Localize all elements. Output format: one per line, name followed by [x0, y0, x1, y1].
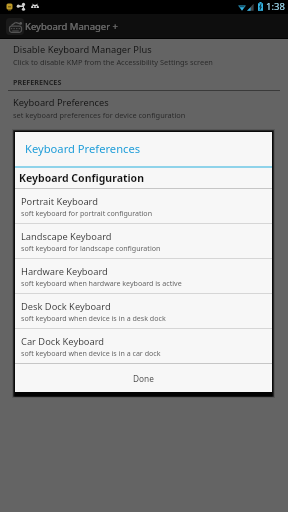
- staticText: soft keyboard for portrait configuration: [21, 208, 153, 218]
- staticText: Disable Keyboard Manager Plus: [13, 43, 152, 56]
- staticText: set keyboard preferences for device conf…: [13, 110, 186, 120]
- button[interactable]: Car Dock Keyboard: [15, 329, 272, 363]
- staticText: 1:38: [266, 0, 285, 13]
- staticText: Click to disable KMP from the Accessibil…: [13, 57, 213, 67]
- button[interactable]: App icon: [6, 18, 24, 35]
- staticText: PREFERENCES: [13, 77, 62, 87]
- button[interactable]: Landscape Keyboard: [15, 224, 272, 258]
- button[interactable]: Hardware Keyboard: [15, 259, 272, 293]
- button[interactable]: Disable Keyboard Manager Plus: [0, 43, 288, 67]
- staticText: soft keyboard when hardware keyboard is …: [21, 278, 182, 288]
- staticText: Landscape Keyboard: [21, 230, 112, 243]
- staticText: Portrait Keyboard: [21, 195, 98, 208]
- button[interactable]: Done: [15, 364, 272, 392]
- staticText: soft keyboard when device is in a desk d…: [21, 313, 166, 323]
- staticText: Keyboard Preferences: [25, 141, 141, 156]
- button[interactable]: Desk Dock Keyboard: [15, 294, 272, 328]
- staticText: Hardware Keyboard: [21, 265, 108, 278]
- staticText: Keyboard Configuration: [19, 171, 145, 185]
- staticText: soft keyboard for landscape configuratio…: [21, 243, 161, 253]
- staticText: Keyboard Manager +: [25, 20, 119, 33]
- staticText: Keyboard Preferences: [13, 96, 109, 109]
- button[interactable]: Portrait Keyboard: [15, 189, 272, 223]
- button[interactable]: Keyboard Preferences: [0, 96, 288, 120]
- staticText: Desk Dock Keyboard: [21, 300, 111, 313]
- staticText: soft keyboard when device is in a car do…: [21, 348, 161, 358]
- staticText: Done: [133, 373, 154, 384]
- staticText: Car Dock Keyboard: [21, 335, 105, 348]
